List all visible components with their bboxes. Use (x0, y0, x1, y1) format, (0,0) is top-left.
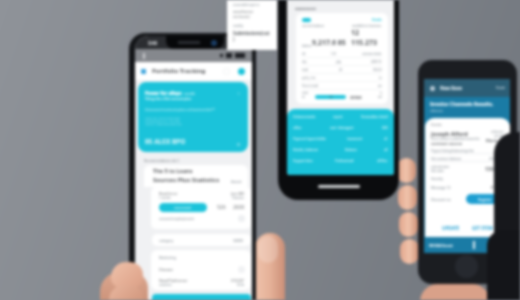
staticText: Enhancements (293, 115, 316, 119)
staticText: New Item (440, 85, 463, 91)
staticText: dir (302, 52, 306, 56)
staticText: Details, balances (293, 148, 319, 152)
button[interactable]: Wallet (152, 294, 251, 300)
staticText: 12 115.273 (351, 28, 382, 48)
staticText: Once residence published invoice list (431, 137, 480, 141)
staticText: 25000011 (489, 157, 504, 161)
staticText: 130 768 (485, 166, 504, 173)
staticText: woodhamer enclosed,/ (233, 9, 271, 19)
staticText: 526 (217, 204, 226, 211)
staticText: 34000 (233, 238, 244, 243)
button[interactable]: Share (429, 85, 436, 92)
staticText: Submissions(cut) (233, 30, 271, 42)
staticText: 24 (339, 68, 343, 72)
staticText: des (302, 60, 307, 64)
staticText: Set contract balance (431, 157, 462, 161)
staticText: all (384, 148, 388, 152)
staticText: Discount no (431, 197, 451, 202)
staticText: 026 (382, 126, 388, 130)
staticText: › (238, 90, 240, 96)
staticText: 1.61 (331, 52, 337, 56)
staticText: reference (491, 130, 504, 134)
staticText: Things for a flat amount plan (145, 97, 192, 101)
staticText: 354.22 (373, 68, 382, 72)
staticText: php (336, 60, 342, 64)
staticText: 20968 (350, 95, 362, 99)
staticText: outcome deals (362, 52, 382, 56)
staticText: New/Platformer (159, 278, 188, 283)
button[interactable]: Back (140, 52, 147, 59)
staticText: Sub value (431, 169, 444, 173)
staticText: wealth (184, 91, 196, 96)
staticText: Register (478, 197, 492, 202)
button[interactable]: category (159, 234, 244, 246)
staticText: Details (372, 18, 382, 22)
staticText: customers (159, 283, 172, 287)
button[interactable] (315, 95, 346, 99)
staticText: 2499 72 (371, 60, 382, 64)
staticText: Recommendations slot 2 (144, 159, 179, 163)
staticText: P 2468 (491, 185, 504, 190)
button[interactable]: recommend (159, 203, 207, 212)
staticText: 77.02 (495, 149, 504, 153)
staticText: recommend (174, 206, 192, 210)
staticText: Over 49 - instrument place tool (145, 122, 182, 125)
staticText: Sources Plus Statistics (153, 176, 220, 184)
staticText: statement (295, 6, 316, 11)
staticText: Amount (231, 180, 242, 184)
staticText: total (302, 68, 309, 72)
button[interactable]: Power for alleys (138, 82, 248, 152)
staticText: subcontractor (431, 165, 450, 169)
staticText: cost interagent (330, 126, 354, 130)
staticText: references (430, 109, 443, 113)
staticText: Payment layout dollar (293, 137, 326, 141)
staticText: we (378, 84, 382, 88)
staticText: available to business (352, 24, 382, 28)
button[interactable]: Register (466, 194, 504, 204)
staticText: GET ITEM (472, 225, 493, 231)
staticText: set (378, 95, 382, 99)
staticText: office (293, 126, 302, 130)
staticText: Balance (345, 148, 357, 152)
staticText: 010207 (231, 278, 245, 283)
button[interactable]: Portfolio Tracking (141, 62, 245, 80)
other: Home (455, 255, 478, 278)
staticText: all files (377, 159, 388, 163)
staticText: current balance (302, 24, 325, 28)
staticText: 1 months (159, 196, 171, 200)
staticText: increment (347, 137, 363, 141)
staticText: Clearance (232, 196, 245, 200)
staticText: accountable report nr (233, 3, 260, 7)
staticText: v2 (384, 137, 388, 141)
staticText: 9 sent (496, 86, 505, 90)
staticText: Read/error (159, 191, 178, 196)
staticText: 9,217.6 85 (312, 38, 346, 48)
staticText: 3:46 (148, 40, 157, 46)
staticText: 54 dis (237, 283, 245, 287)
staticText: po/cs, rtrs (302, 76, 316, 80)
staticText: More 8.03 - 20 on a new wave (145, 116, 180, 119)
staticText: Power for alleys (145, 90, 182, 96)
staticText: category (159, 238, 174, 243)
staticText: Marketing (159, 255, 176, 260)
staticText: Events (431, 122, 442, 127)
staticText: 99 504 Invst (429, 243, 453, 248)
staticText: Message 12 (431, 185, 451, 190)
staticText: Transaction detail (361, 115, 388, 119)
staticText: Professional (335, 159, 354, 163)
staticText: balance (302, 44, 312, 48)
staticText: Just 480 (231, 191, 245, 196)
staticText: Portfolio Tracking (152, 67, 206, 75)
staticText: Payout listing/balancings list (431, 149, 474, 153)
staticText: report (333, 115, 343, 119)
staticText: Support desc (293, 159, 313, 163)
staticText: Invoice Channels Results. (430, 101, 494, 108)
staticText: Time is total (302, 84, 318, 88)
